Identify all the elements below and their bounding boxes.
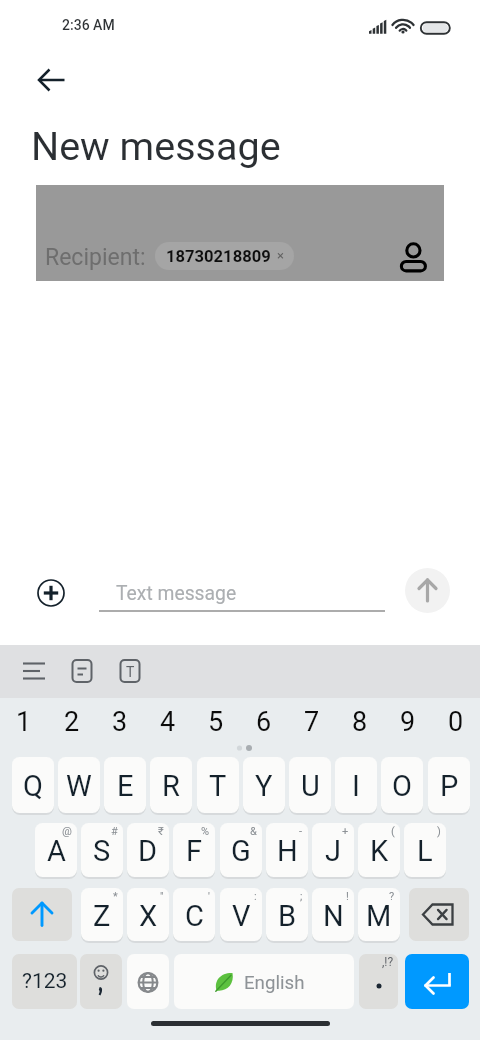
staticText: U [301, 769, 320, 803]
button[interactable]: S [81, 823, 123, 877]
button[interactable]: T [197, 757, 239, 813]
button[interactable]: ,!? [359, 954, 398, 1009]
button[interactable]: Back [28, 58, 72, 102]
button[interactable]: Shift [12, 888, 72, 941]
staticText: E [117, 769, 134, 803]
staticText: B [278, 899, 297, 933]
staticText: ( [391, 825, 395, 838]
button[interactable]: ?123 [12, 954, 77, 1009]
staticText: × [277, 248, 284, 263]
button[interactable]: W [58, 757, 100, 813]
button[interactable]: Emoji [80, 954, 122, 1009]
button[interactable]: K [358, 823, 400, 877]
button[interactable]: Choose contact [393, 240, 433, 280]
button[interactable]: 9 [384, 698, 432, 756]
staticText: New message [31, 123, 281, 169]
staticText: 9 [400, 706, 416, 738]
button[interactable]: Recipient: [36, 185, 444, 281]
staticText: F [186, 834, 203, 868]
button[interactable]: Clipboard [58, 645, 106, 698]
button[interactable]: 3 [96, 698, 144, 756]
button[interactable]: Text style [106, 645, 154, 698]
button[interactable]: English [174, 954, 354, 1009]
staticText: I [352, 769, 360, 803]
staticText: # [111, 825, 118, 838]
button[interactable]: 0 [432, 698, 480, 756]
staticText: V [232, 899, 251, 933]
staticText: + [342, 825, 349, 838]
button[interactable]: Send [405, 568, 450, 613]
button[interactable]: R [150, 757, 192, 813]
button[interactable]: Change language [127, 954, 169, 1009]
button[interactable]: C [173, 888, 215, 941]
staticText: 1 [16, 706, 32, 738]
button[interactable]: D [127, 823, 169, 877]
button[interactable]: J [312, 823, 354, 877]
button[interactable]: P [428, 757, 470, 813]
staticText: : [254, 890, 257, 903]
staticText: N [323, 899, 344, 933]
staticText: Z [93, 899, 111, 933]
button[interactable]: V [220, 888, 262, 941]
staticText: C [185, 899, 204, 933]
button[interactable]: 6 [240, 698, 288, 756]
staticText: 2 [64, 706, 80, 738]
button[interactable]: B [266, 888, 308, 941]
staticText: Y [255, 769, 273, 803]
button[interactable]: 8 [336, 698, 384, 756]
button[interactable]: I [335, 757, 377, 813]
staticText: ; [300, 890, 303, 903]
staticText: 8 [352, 706, 368, 738]
button[interactable]: E [104, 757, 146, 813]
button[interactable]: H [266, 823, 308, 877]
button[interactable]: G [220, 823, 262, 877]
staticText: D [138, 834, 158, 868]
staticText: 3 [112, 706, 128, 738]
button[interactable]: Menu [10, 645, 58, 698]
staticText: 0 [448, 706, 464, 738]
button[interactable]: 4 [144, 698, 192, 756]
button[interactable]: Attach [33, 575, 69, 611]
staticText: H [277, 834, 298, 868]
button[interactable]: Q [12, 757, 54, 813]
staticText: 7 [304, 706, 320, 738]
button[interactable]: 1 [0, 698, 48, 756]
staticText: K [370, 834, 389, 868]
button[interactable]: X [127, 888, 169, 941]
button[interactable]: Backspace [409, 888, 469, 941]
button[interactable]: Z [81, 888, 123, 941]
button[interactable]: U [289, 757, 331, 813]
button[interactable]: O [381, 757, 423, 813]
staticText: ?123 [22, 969, 68, 994]
button[interactable]: L [404, 823, 446, 877]
staticText: ? [389, 890, 395, 903]
staticText: O [392, 769, 412, 803]
button[interactable]: 7 [288, 698, 336, 756]
staticText: T [209, 769, 227, 803]
staticText: S [93, 834, 111, 868]
button[interactable]: F [173, 823, 215, 877]
staticText: 2:36 AM [62, 17, 115, 33]
button[interactable]: 18730218809 [166, 242, 284, 270]
button[interactable]: 5 [192, 698, 240, 756]
button[interactable]: Y [243, 757, 285, 813]
staticText: M [366, 899, 392, 933]
staticText: Recipient: [45, 244, 146, 271]
staticText: T [126, 664, 135, 680]
staticText: Q [23, 769, 43, 803]
button[interactable]: Enter [405, 954, 469, 1009]
button[interactable]: 2 [48, 698, 96, 756]
staticText: X [139, 899, 158, 933]
staticText: A [47, 834, 66, 868]
staticText: Text message [116, 582, 237, 605]
button[interactable]: N [312, 888, 354, 941]
staticText: P [440, 769, 459, 803]
staticText: R [162, 769, 180, 803]
button[interactable]: M [358, 888, 400, 941]
staticText: English [244, 972, 305, 994]
staticText: ₹ [158, 825, 164, 838]
staticText: L [417, 834, 433, 868]
button[interactable]: A [35, 823, 77, 877]
staticText: J [325, 834, 342, 868]
staticText: - [299, 825, 303, 838]
